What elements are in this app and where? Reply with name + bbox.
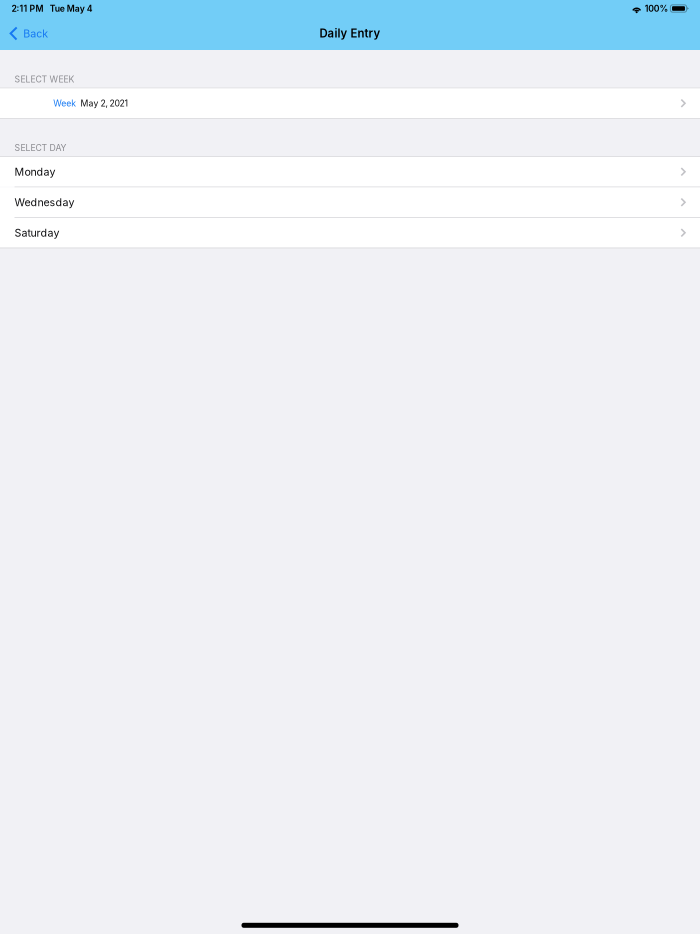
staticText: Back (23, 27, 48, 40)
staticText: 2:11 PM (11, 3, 43, 14)
staticText: Saturday (15, 226, 60, 239)
staticText: Monday (15, 165, 56, 178)
staticText: Wednesday (15, 196, 75, 209)
staticText: May 2, 2021 (81, 98, 129, 108)
button[interactable]: Week (0, 88, 700, 118)
staticText: SELECT DAY (15, 142, 67, 153)
button[interactable]: Saturday (0, 218, 700, 247)
button[interactable]: Back (0, 17, 58, 50)
staticText: Tue May 4 (50, 3, 93, 14)
staticText: 100% (645, 3, 668, 14)
staticText: SELECT WEEK (15, 74, 75, 85)
button[interactable]: Wednesday (0, 187, 700, 217)
button[interactable]: Monday (0, 157, 700, 186)
staticText: Week (53, 98, 76, 108)
staticText: Daily Entry (319, 27, 380, 40)
